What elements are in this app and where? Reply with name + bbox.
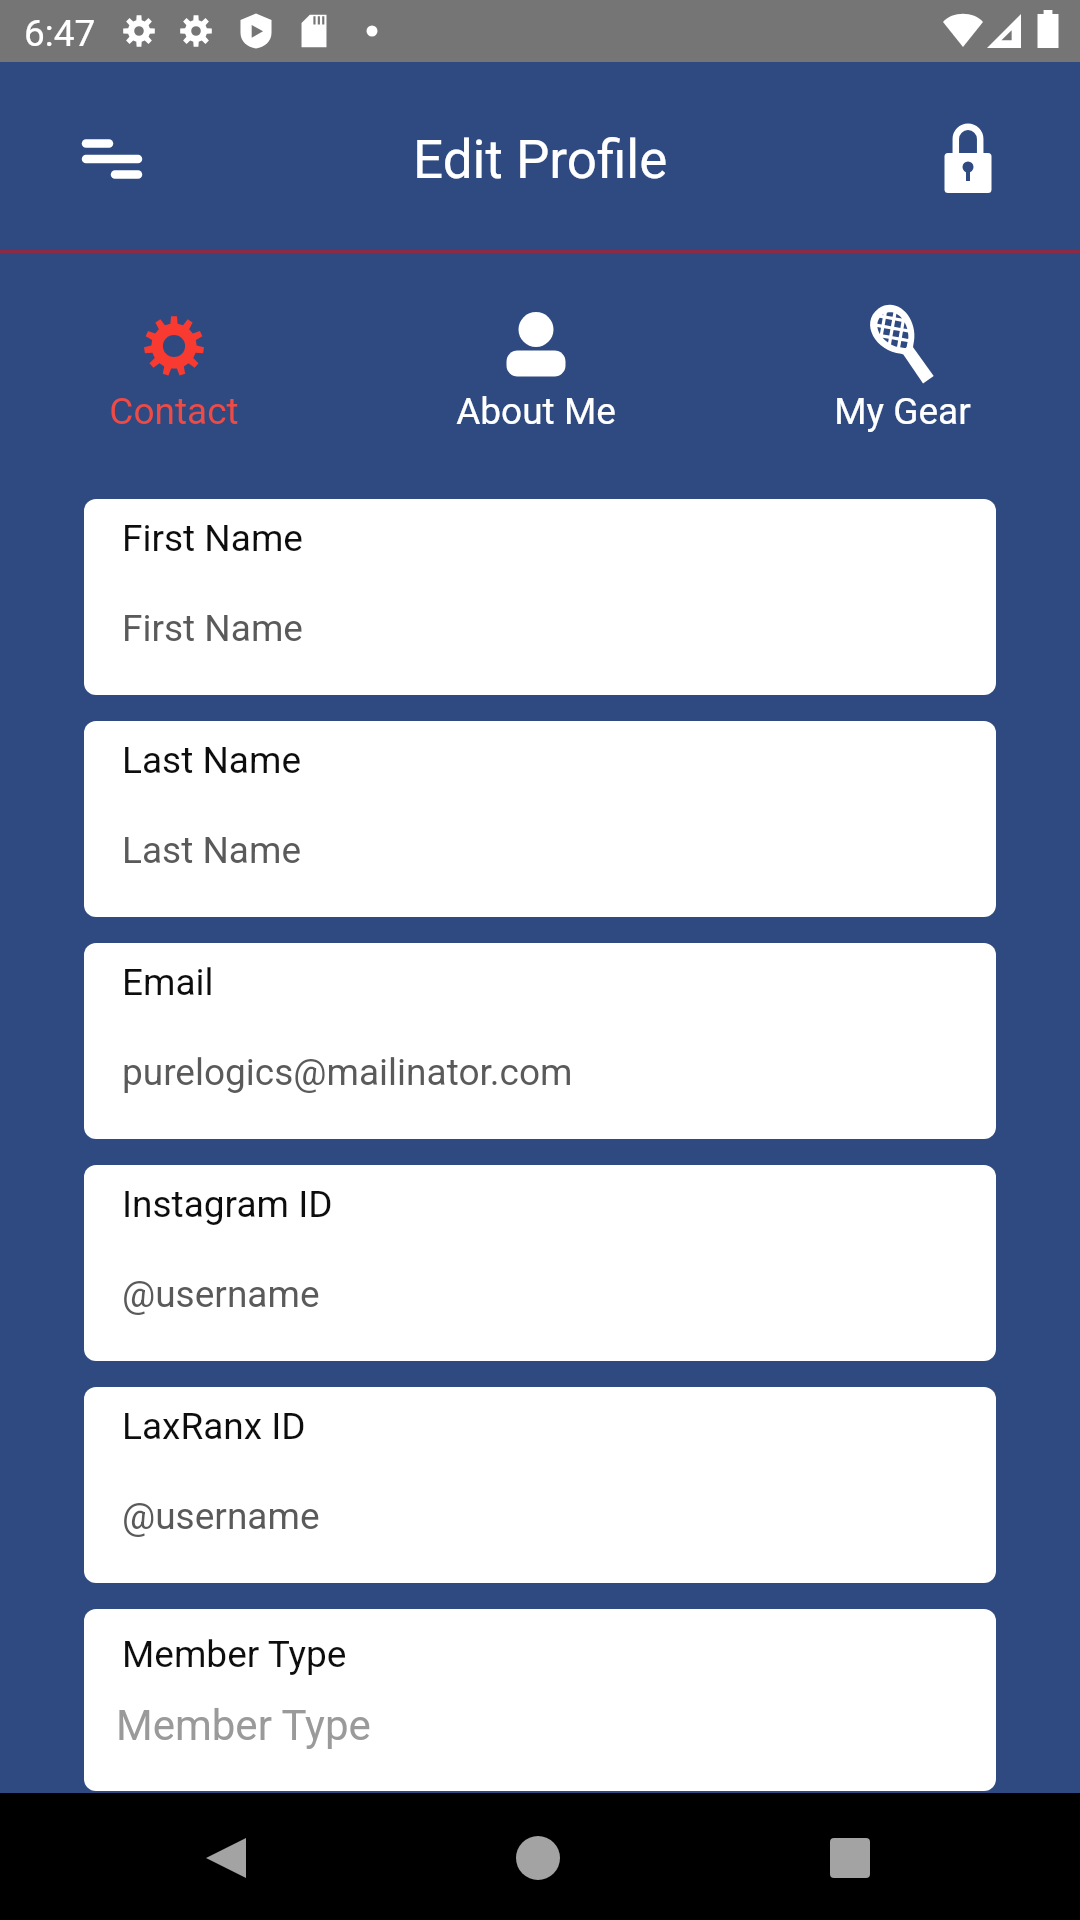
button[interactable]: Email	[84, 943, 996, 1139]
staticText: Last Name	[122, 739, 302, 782]
staticText: @username	[122, 1273, 320, 1316]
staticText: Member Type	[116, 1701, 371, 1750]
staticText: purelogics@mailinator.com	[122, 1051, 573, 1094]
staticText: 6:47	[24, 12, 96, 55]
staticText: My Gear	[834, 390, 971, 433]
staticText: LaxRanx ID	[122, 1405, 306, 1448]
button[interactable]: First Name	[84, 499, 996, 695]
button[interactable]: Lock	[918, 103, 1018, 203]
button[interactable]: Instagram ID	[84, 1165, 996, 1361]
button[interactable]: Menu	[62, 109, 162, 209]
staticText: First Name	[122, 517, 303, 560]
staticText: About Me	[456, 390, 616, 433]
staticText: Edit Profile	[413, 129, 668, 191]
button[interactable]: Last Name	[84, 721, 996, 917]
button[interactable]: LaxRanx ID	[84, 1387, 996, 1583]
button[interactable]: Member Type	[84, 1609, 996, 1791]
staticText: Instagram ID	[122, 1183, 333, 1226]
staticText: @username	[122, 1495, 320, 1538]
staticText: Last Name	[122, 829, 302, 872]
button[interactable]: About Me	[360, 253, 720, 499]
staticText: Email	[122, 961, 214, 1004]
staticText: Contact	[109, 390, 239, 433]
button[interactable]: Contact	[0, 253, 360, 499]
staticText: First Name	[122, 607, 303, 650]
button[interactable]: My Gear	[720, 253, 1080, 499]
staticText: Member Type	[122, 1633, 347, 1676]
